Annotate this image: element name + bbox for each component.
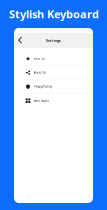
button[interactable]: Rate Us	[14, 52, 93, 66]
staticText: Stylish Keyboard	[9, 7, 99, 21]
staticText: Privacy Policy	[33, 85, 51, 88]
button[interactable]: More Apps	[14, 94, 93, 107]
staticText: More Apps	[33, 99, 48, 102]
staticText: Share Us	[33, 71, 45, 74]
button[interactable]: Back	[14, 33, 27, 48]
staticText: Rate Us	[33, 57, 44, 60]
button[interactable]: Privacy Policy	[14, 80, 93, 94]
staticText: Settings	[46, 38, 61, 43]
button[interactable]: Share Us	[14, 66, 93, 80]
